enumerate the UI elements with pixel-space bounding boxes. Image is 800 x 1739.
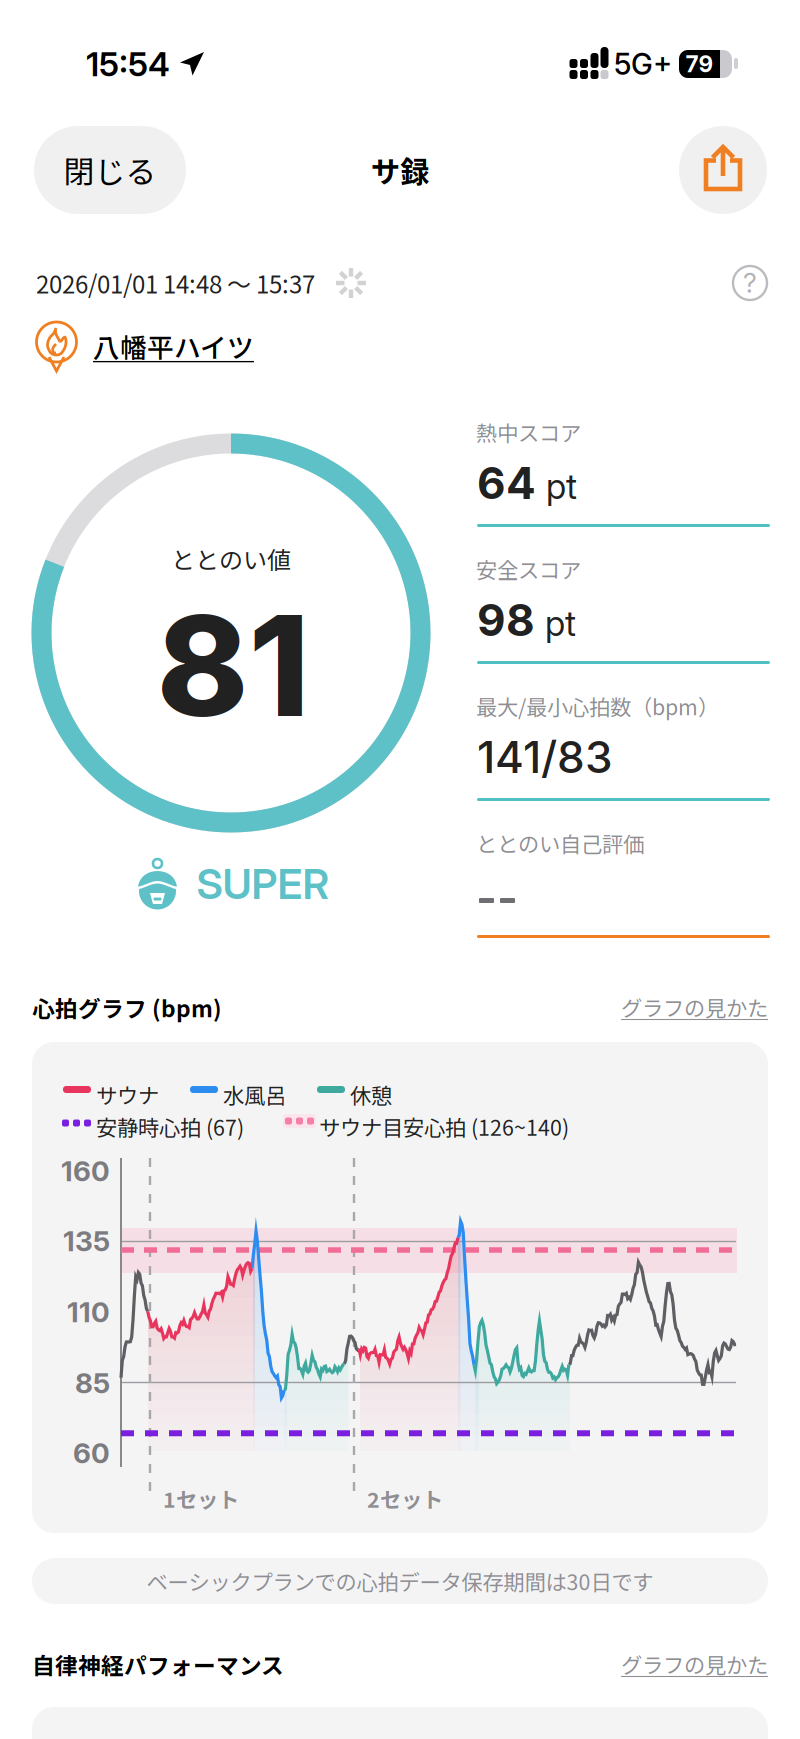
staticText: 最大/最小心拍数（bpm） [476,691,719,721]
staticText: ? [743,267,757,299]
staticText: 2セット [367,1483,443,1514]
staticText: 60 [73,1436,110,1470]
staticText: 110 [67,1295,110,1329]
staticText: グラフの見かた [621,1649,768,1679]
staticText: 安全スコア [476,554,581,584]
staticText: 79 [685,50,713,78]
staticText: pt [546,465,577,507]
staticText: 水風呂 [223,1079,286,1110]
button[interactable]: Share [679,126,767,214]
staticText: 81 [156,582,309,749]
staticText: 160 [61,1154,110,1188]
staticText: 心拍グラフ (bpm) [32,991,222,1024]
staticText: ととのい値 [171,541,291,576]
staticText: SUPER [196,859,329,909]
staticText: 5G+ [614,46,672,82]
button[interactable]: 閉じる [34,126,186,214]
staticText: 安静時心拍 (67) [96,1111,244,1142]
staticText: 98 [477,593,535,647]
staticText: 1セット [163,1483,239,1514]
staticText: グラフの見かた [621,992,768,1022]
staticText: 2026/01/01 14:48 〜 15:37 [36,266,315,300]
staticText: 熱中スコア [476,417,581,447]
staticText: 85 [75,1366,110,1400]
staticText: サウナ [96,1079,159,1110]
staticText: 自律神経パフォーマンス [32,1648,284,1681]
button[interactable]: グラフの見かた [568,1647,768,1681]
staticText: 15:54 [86,44,170,84]
staticText: ベーシックプランでの心拍データ保存期間は30日です [146,1566,653,1596]
staticText: 141/83 [477,730,613,784]
button[interactable]: 八幡平ハイツ [0,318,800,374]
staticText: 八幡平ハイツ [93,327,254,365]
staticText: サウナ目安心拍 (126~140) [319,1111,569,1142]
staticText: サ録 [371,149,429,191]
button[interactable]: Help [733,266,767,300]
staticText: 64 [477,456,536,510]
staticText: 135 [63,1224,110,1258]
staticText: pt [545,602,576,644]
staticText: ととのい自己評価 [476,828,644,858]
staticText: 閉じる [63,148,156,192]
button[interactable]: グラフの見かた [568,990,768,1024]
staticText: 休憩 [350,1079,392,1110]
